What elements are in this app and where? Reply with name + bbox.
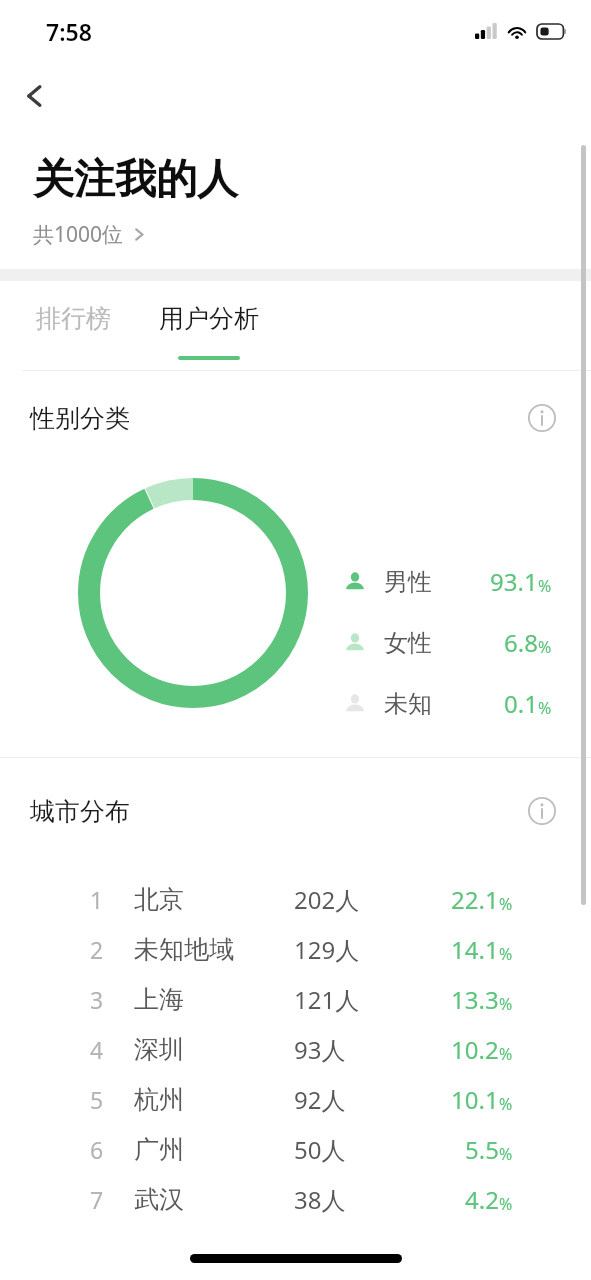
staticText: 5 [90,1084,104,1115]
staticText: % [499,993,513,1015]
button[interactable]: 6 [0,1124,591,1174]
staticText: 129人 [294,933,360,966]
staticText: 深圳 [134,1034,184,1065]
staticText: 上海 [134,984,184,1015]
staticText: 2 [90,934,104,965]
staticText: 关注我的人 [33,154,238,206]
staticText: 未知 [384,689,432,719]
staticText: 城市分布 [30,796,130,827]
staticText: % [538,636,552,658]
button[interactable]: Info [523,399,561,437]
staticText: % [538,575,552,597]
staticText: 0.1 [504,687,538,720]
button[interactable]: 2 [0,924,591,974]
staticText: 7 [90,1184,104,1215]
staticText: 武汉 [134,1184,184,1215]
staticText: 4 [90,1034,104,1065]
staticText: 男性 [384,567,432,597]
staticText: 排行榜 [36,303,111,334]
staticText: 121人 [294,983,360,1016]
staticText: 93人 [294,1033,346,1066]
staticText: % [538,697,552,719]
staticText: % [499,893,513,915]
staticText: 共1000位 [33,220,124,249]
staticText: 女性 [384,628,432,658]
staticText: 北京 [134,884,184,915]
staticText: 杭州 [134,1084,184,1115]
button[interactable]: 7 [0,1174,591,1224]
staticText: 1 [90,884,104,915]
staticText: 6 [90,1134,104,1165]
button[interactable]: 1 [0,874,591,924]
button[interactable]: 用户分析 [153,295,265,360]
staticText: % [499,943,513,965]
staticText: 未知地域 [134,934,234,965]
staticText: 3 [90,984,104,1015]
staticText: 22.1 [451,883,499,916]
staticText: 10.1 [451,1083,499,1116]
button[interactable]: Info [523,792,561,830]
staticText: 50人 [294,1133,346,1166]
button[interactable]: 共1000位 [33,218,154,251]
staticText: 93.1 [490,565,538,598]
staticText: 7:58 [46,16,92,47]
staticText: 38人 [294,1183,346,1216]
staticText: 5.5 [465,1133,499,1166]
staticText: 14.1 [451,933,499,966]
staticText: 92人 [294,1083,346,1116]
staticText: 13.3 [451,983,499,1016]
staticText: 6.8 [504,626,538,659]
staticText: 用户分析 [159,303,259,334]
staticText: % [499,1143,513,1165]
staticText: % [499,1043,513,1065]
button[interactable]: 4 [0,1024,591,1074]
button[interactable]: 排行榜 [30,295,117,342]
staticText: 202人 [294,883,360,916]
staticText: % [499,1193,513,1215]
staticText: 性别分类 [30,403,130,434]
staticText: 广州 [134,1134,184,1165]
staticText: 4.2 [465,1183,499,1216]
staticText: % [499,1093,513,1115]
button[interactable]: 3 [0,974,591,1024]
staticText: 10.2 [451,1033,499,1066]
button[interactable]: 5 [0,1074,591,1124]
button[interactable]: Back [8,69,62,123]
